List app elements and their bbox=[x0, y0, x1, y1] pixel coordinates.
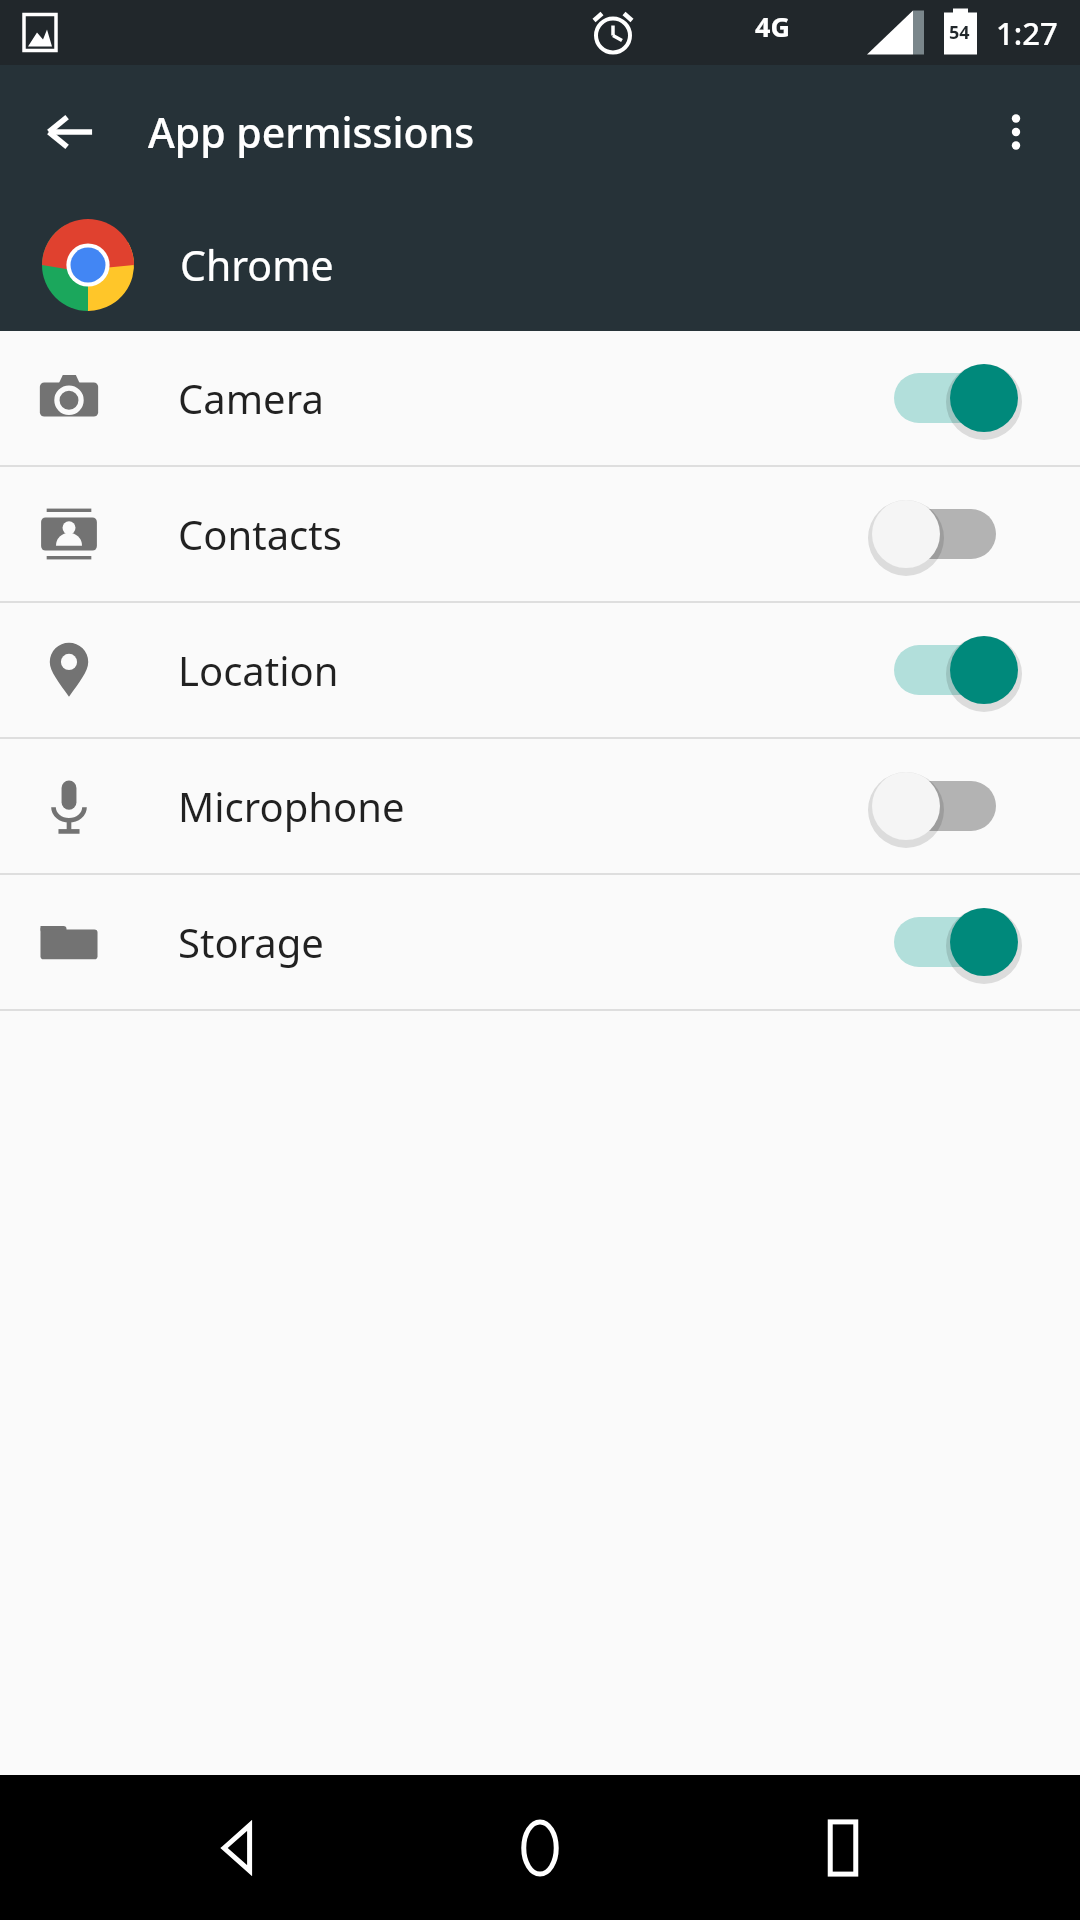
staticText: Storage bbox=[178, 915, 894, 969]
button[interactable]: Storage permission bbox=[894, 901, 1018, 983]
button[interactable]: Storage bbox=[0, 875, 1080, 1009]
staticText: App permissions bbox=[148, 104, 475, 160]
button[interactable]: Location permission bbox=[894, 629, 1018, 711]
staticText: 54 bbox=[949, 20, 970, 45]
button[interactable]: Navigate up bbox=[24, 86, 116, 178]
staticText: Chrome bbox=[180, 237, 334, 293]
button[interactable]: Location bbox=[0, 603, 1080, 737]
button[interactable]: Microphone permission bbox=[894, 765, 1018, 847]
button[interactable]: Contacts permission bbox=[894, 493, 1018, 575]
staticText: Location bbox=[178, 643, 894, 697]
button[interactable]: Back bbox=[173, 1783, 303, 1913]
button[interactable]: Chrome bbox=[0, 198, 1080, 331]
button[interactable]: Microphone bbox=[0, 739, 1080, 873]
button[interactable]: Camera bbox=[0, 331, 1080, 465]
button[interactable]: Camera permission bbox=[894, 357, 1018, 439]
staticText: Camera bbox=[178, 371, 894, 425]
button[interactable]: More options bbox=[972, 88, 1060, 176]
staticText: Contacts bbox=[178, 507, 894, 561]
staticText: 4G bbox=[755, 8, 790, 45]
button[interactable]: Recent apps bbox=[778, 1783, 908, 1913]
staticText: 1:27 bbox=[996, 12, 1058, 54]
button[interactable]: Contacts bbox=[0, 467, 1080, 601]
staticText: Microphone bbox=[178, 779, 894, 833]
button[interactable]: Home bbox=[475, 1783, 605, 1913]
